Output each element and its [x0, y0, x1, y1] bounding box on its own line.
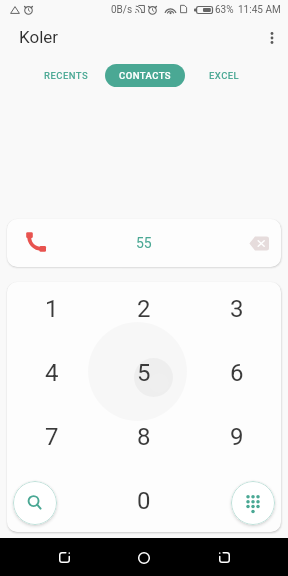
button[interactable]: CONTACTS — [105, 64, 185, 87]
staticText: 9 — [230, 423, 244, 451]
staticText: 7 — [45, 423, 59, 451]
button[interactable]: Delete — [238, 222, 280, 264]
staticText: 8 — [137, 423, 151, 451]
button[interactable]: 4 — [14, 342, 90, 404]
button[interactable]: 5 — [106, 342, 182, 404]
button[interactable]: 7 — [14, 406, 90, 468]
staticText: EXCEL — [209, 70, 240, 81]
button[interactable]: 8 — [106, 406, 182, 468]
button[interactable]: Recents — [205, 538, 243, 576]
staticText: 0 — [137, 487, 151, 515]
staticText: 0B/s — [111, 4, 133, 16]
button[interactable]: 6 — [199, 342, 275, 404]
button[interactable]: Search — [13, 481, 57, 525]
button[interactable]: EXCEL — [196, 62, 252, 88]
staticText: Koler — [19, 27, 59, 47]
staticText: 5 — [137, 359, 151, 387]
staticText: 3 — [230, 295, 244, 323]
staticText: CONTACTS — [119, 70, 172, 81]
staticText: 55 — [136, 235, 152, 251]
button[interactable]: RECENTS — [38, 62, 94, 88]
button[interactable]: 3 — [199, 282, 275, 340]
button[interactable]: Back — [45, 538, 83, 576]
staticText: 11:45 AM — [238, 4, 281, 16]
button[interactable]: 9 — [199, 406, 275, 468]
staticText: 2 — [137, 295, 151, 323]
button[interactable]: Call — [14, 221, 56, 263]
staticText: 6 — [230, 359, 244, 387]
staticText: 63% — [215, 4, 234, 16]
staticText: 1 — [45, 295, 59, 323]
button[interactable]: Home — [125, 538, 163, 576]
button[interactable]: 0 — [106, 470, 182, 532]
button[interactable]: 1 — [14, 282, 90, 340]
button[interactable]: More options — [256, 22, 288, 54]
staticText: RECENTS — [44, 70, 89, 81]
button[interactable]: Dialpad — [231, 481, 275, 525]
button[interactable]: 2 — [106, 282, 182, 340]
staticText: 4 — [45, 359, 59, 387]
